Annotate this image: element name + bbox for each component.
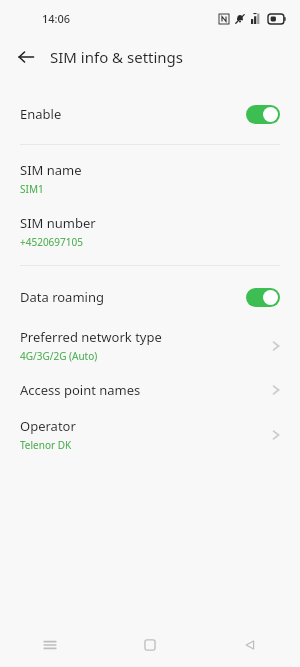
staticText: Access point names bbox=[20, 381, 272, 399]
button[interactable]: Enable bbox=[0, 92, 300, 136]
button[interactable]: Recent apps bbox=[0, 623, 100, 667]
staticText: SIM info & settings bbox=[50, 47, 184, 67]
staticText: +4520697105 bbox=[20, 235, 83, 249]
staticText: 4G/3G/2G (Auto) bbox=[20, 349, 98, 363]
button[interactable]: Data roaming bbox=[0, 276, 300, 318]
button[interactable]: Back bbox=[200, 623, 300, 667]
staticText: 14:06 bbox=[42, 11, 71, 26]
button[interactable]: Operator bbox=[0, 415, 300, 454]
staticText: SIM number bbox=[20, 214, 96, 232]
staticText: Operator bbox=[20, 417, 76, 435]
button[interactable]: Preferred network type bbox=[0, 326, 300, 365]
staticText: Data roaming bbox=[20, 288, 246, 306]
button[interactable]: Back bbox=[10, 41, 42, 73]
button[interactable]: SIM number bbox=[0, 212, 300, 251]
staticText: Preferred network type bbox=[20, 328, 162, 346]
button[interactable]: Access point names bbox=[0, 379, 300, 401]
staticText: SIM name bbox=[20, 161, 82, 179]
button[interactable]: Home bbox=[100, 623, 200, 667]
button[interactable]: SIM name bbox=[0, 159, 300, 198]
staticText: Enable bbox=[20, 105, 246, 123]
staticText: Telenor DK bbox=[20, 438, 72, 452]
staticText: SIM1 bbox=[20, 182, 44, 196]
